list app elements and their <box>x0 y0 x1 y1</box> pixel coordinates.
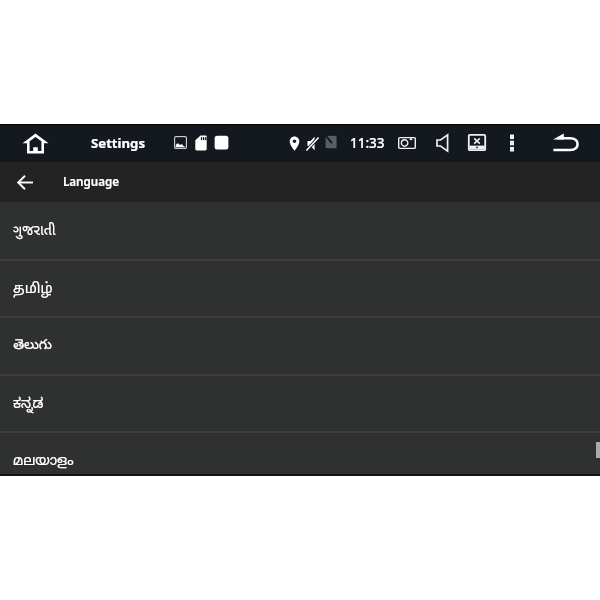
button[interactable]: Apps <box>214 135 229 151</box>
button[interactable]: Gallery <box>174 136 187 149</box>
staticText: ಕನ್ನಡ <box>13 397 44 416</box>
button[interactable]: தமிழ் <box>0 260 600 317</box>
staticText: Language <box>63 174 119 190</box>
button[interactable]: ગુજરાતી <box>0 202 600 259</box>
button[interactable]: Home <box>22 133 49 154</box>
staticText: తెలుగు <box>13 337 52 356</box>
button[interactable]: Back <box>552 133 579 152</box>
button[interactable]: SD card <box>195 135 207 151</box>
staticText: മലയാളം <box>13 453 74 471</box>
staticText: 11:33 <box>350 134 385 152</box>
button[interactable]: Volume <box>436 134 449 152</box>
button[interactable]: Screen off <box>468 134 486 151</box>
button[interactable]: More options <box>509 134 515 152</box>
button[interactable]: ಕನ್ನಡ <box>0 374 600 431</box>
button[interactable]: മലയാളം <box>0 432 600 489</box>
staticText: Settings <box>91 134 146 152</box>
button[interactable]: Navigate up <box>17 175 34 190</box>
button[interactable]: తెలుగు <box>0 317 600 374</box>
staticText: தமிழ் <box>13 281 53 298</box>
staticText: ગુજરાતી <box>13 222 56 240</box>
button[interactable]: Camera <box>398 137 416 149</box>
